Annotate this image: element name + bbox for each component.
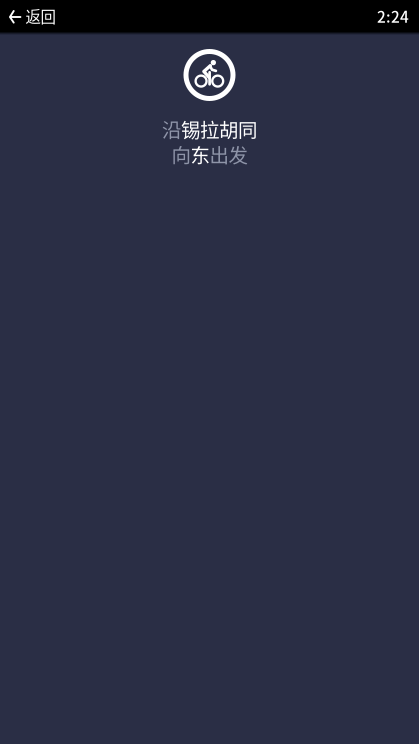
staticText: 2:24 bbox=[377, 5, 409, 27]
staticText: 沿 bbox=[162, 115, 181, 143]
staticText: 锡拉胡同 bbox=[181, 115, 257, 143]
staticText: 向 bbox=[171, 140, 190, 168]
button[interactable]: 返回 bbox=[0, 0, 63, 32]
staticText: 出发 bbox=[209, 140, 247, 168]
staticText: 东 bbox=[190, 140, 209, 168]
staticText: 返回 bbox=[25, 5, 55, 27]
